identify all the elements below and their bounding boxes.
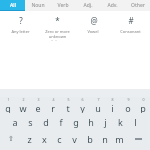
button[interactable]: 7 — [90, 97, 105, 113]
staticText: w — [19, 102, 27, 113]
button[interactable]: ? — [4, 14, 36, 34]
staticText: c — [57, 133, 62, 145]
staticText: a — [12, 116, 18, 128]
staticText: 0 — [142, 97, 145, 102]
button[interactable]: 0 — [135, 97, 150, 113]
button[interactable]: Adj. — [75, 0, 100, 11]
button[interactable]: 2 — [15, 97, 30, 113]
staticText: Noun — [31, 2, 45, 9]
staticText: 4 — [52, 97, 55, 102]
staticText: g — [73, 116, 79, 128]
button[interactable]: s — [23, 114, 38, 130]
button[interactable]: n — [97, 131, 112, 147]
staticText: Vowel — [87, 29, 99, 34]
button[interactable]: 3 — [30, 97, 45, 113]
staticText: b — [87, 133, 93, 145]
staticText: # — [128, 15, 134, 26]
button[interactable]: 1 — [0, 97, 15, 113]
button[interactable]: v — [67, 131, 82, 147]
staticText: r — [51, 102, 55, 113]
staticText: 7 — [97, 97, 100, 102]
button[interactable]: Other — [125, 0, 150, 11]
button[interactable]: 4 — [45, 97, 60, 113]
button[interactable]: # — [114, 14, 146, 34]
button[interactable]: 9 — [120, 97, 135, 113]
button[interactable]: d — [38, 114, 53, 130]
staticText: All — [10, 2, 16, 9]
button[interactable]: Shift — [0, 131, 22, 147]
button[interactable]: h — [83, 114, 98, 130]
staticText: j — [104, 116, 107, 128]
staticText: n — [102, 133, 108, 145]
staticText: o — [125, 102, 131, 113]
staticText: ⇧ — [8, 135, 14, 143]
staticText: 8 — [111, 97, 114, 102]
staticText: ? — [19, 15, 23, 26]
staticText: 3 — [37, 97, 40, 102]
staticText: * — [55, 15, 60, 26]
staticText: Adj. — [83, 2, 93, 9]
button[interactable]: 6 — [75, 97, 90, 113]
staticText: Zero or more unknown letters — [45, 29, 70, 41]
button[interactable]: l — [128, 114, 143, 130]
staticText: x — [42, 133, 47, 145]
staticText: h — [88, 116, 94, 128]
button[interactable]: * — [41, 14, 73, 41]
staticText: Any letter — [11, 29, 30, 34]
staticText: m — [115, 133, 124, 145]
staticText: Consonant — [120, 29, 141, 34]
button[interactable]: c — [52, 131, 67, 147]
button[interactable]: 8 — [105, 97, 120, 113]
staticText: 2 — [22, 97, 25, 102]
staticText: f — [59, 116, 63, 128]
staticText: @ — [90, 15, 98, 26]
button[interactable]: 5 — [60, 97, 75, 113]
staticText: s — [28, 116, 33, 128]
staticText: l — [134, 116, 137, 128]
button[interactable]: x — [37, 131, 52, 147]
button[interactable]: g — [68, 114, 83, 130]
staticText: d — [43, 116, 49, 128]
button[interactable]: k — [113, 114, 128, 130]
button[interactable]: f — [53, 114, 68, 130]
staticText: e — [35, 102, 41, 113]
button[interactable]: Verb — [50, 0, 75, 11]
button[interactable]: a — [7, 114, 23, 130]
button[interactable]: m — [112, 131, 127, 147]
button[interactable]: j — [98, 114, 113, 130]
button[interactable]: Noun — [25, 0, 50, 11]
button[interactable]: @ — [77, 14, 109, 34]
button[interactable]: Backspace — [127, 131, 150, 147]
staticText: q — [5, 102, 11, 113]
button[interactable]: All — [0, 0, 25, 11]
staticText: k — [118, 116, 123, 128]
staticText: v — [72, 133, 77, 145]
staticText: Verb — [57, 2, 69, 9]
staticText: Adv. — [107, 2, 118, 9]
staticText: t — [66, 102, 70, 113]
staticText: 5 — [67, 97, 70, 102]
button[interactable]: z — [22, 131, 37, 147]
staticText: 1 — [7, 97, 10, 102]
staticText: z — [27, 133, 32, 145]
staticText: Other — [131, 2, 145, 9]
staticText: p — [140, 102, 146, 113]
staticText: u — [95, 102, 101, 113]
staticText: y — [80, 102, 85, 113]
staticText: i — [111, 102, 114, 113]
staticText: 9 — [127, 97, 130, 102]
button[interactable]: b — [82, 131, 97, 147]
staticText: 6 — [81, 97, 84, 102]
button[interactable]: Adv. — [100, 0, 125, 11]
